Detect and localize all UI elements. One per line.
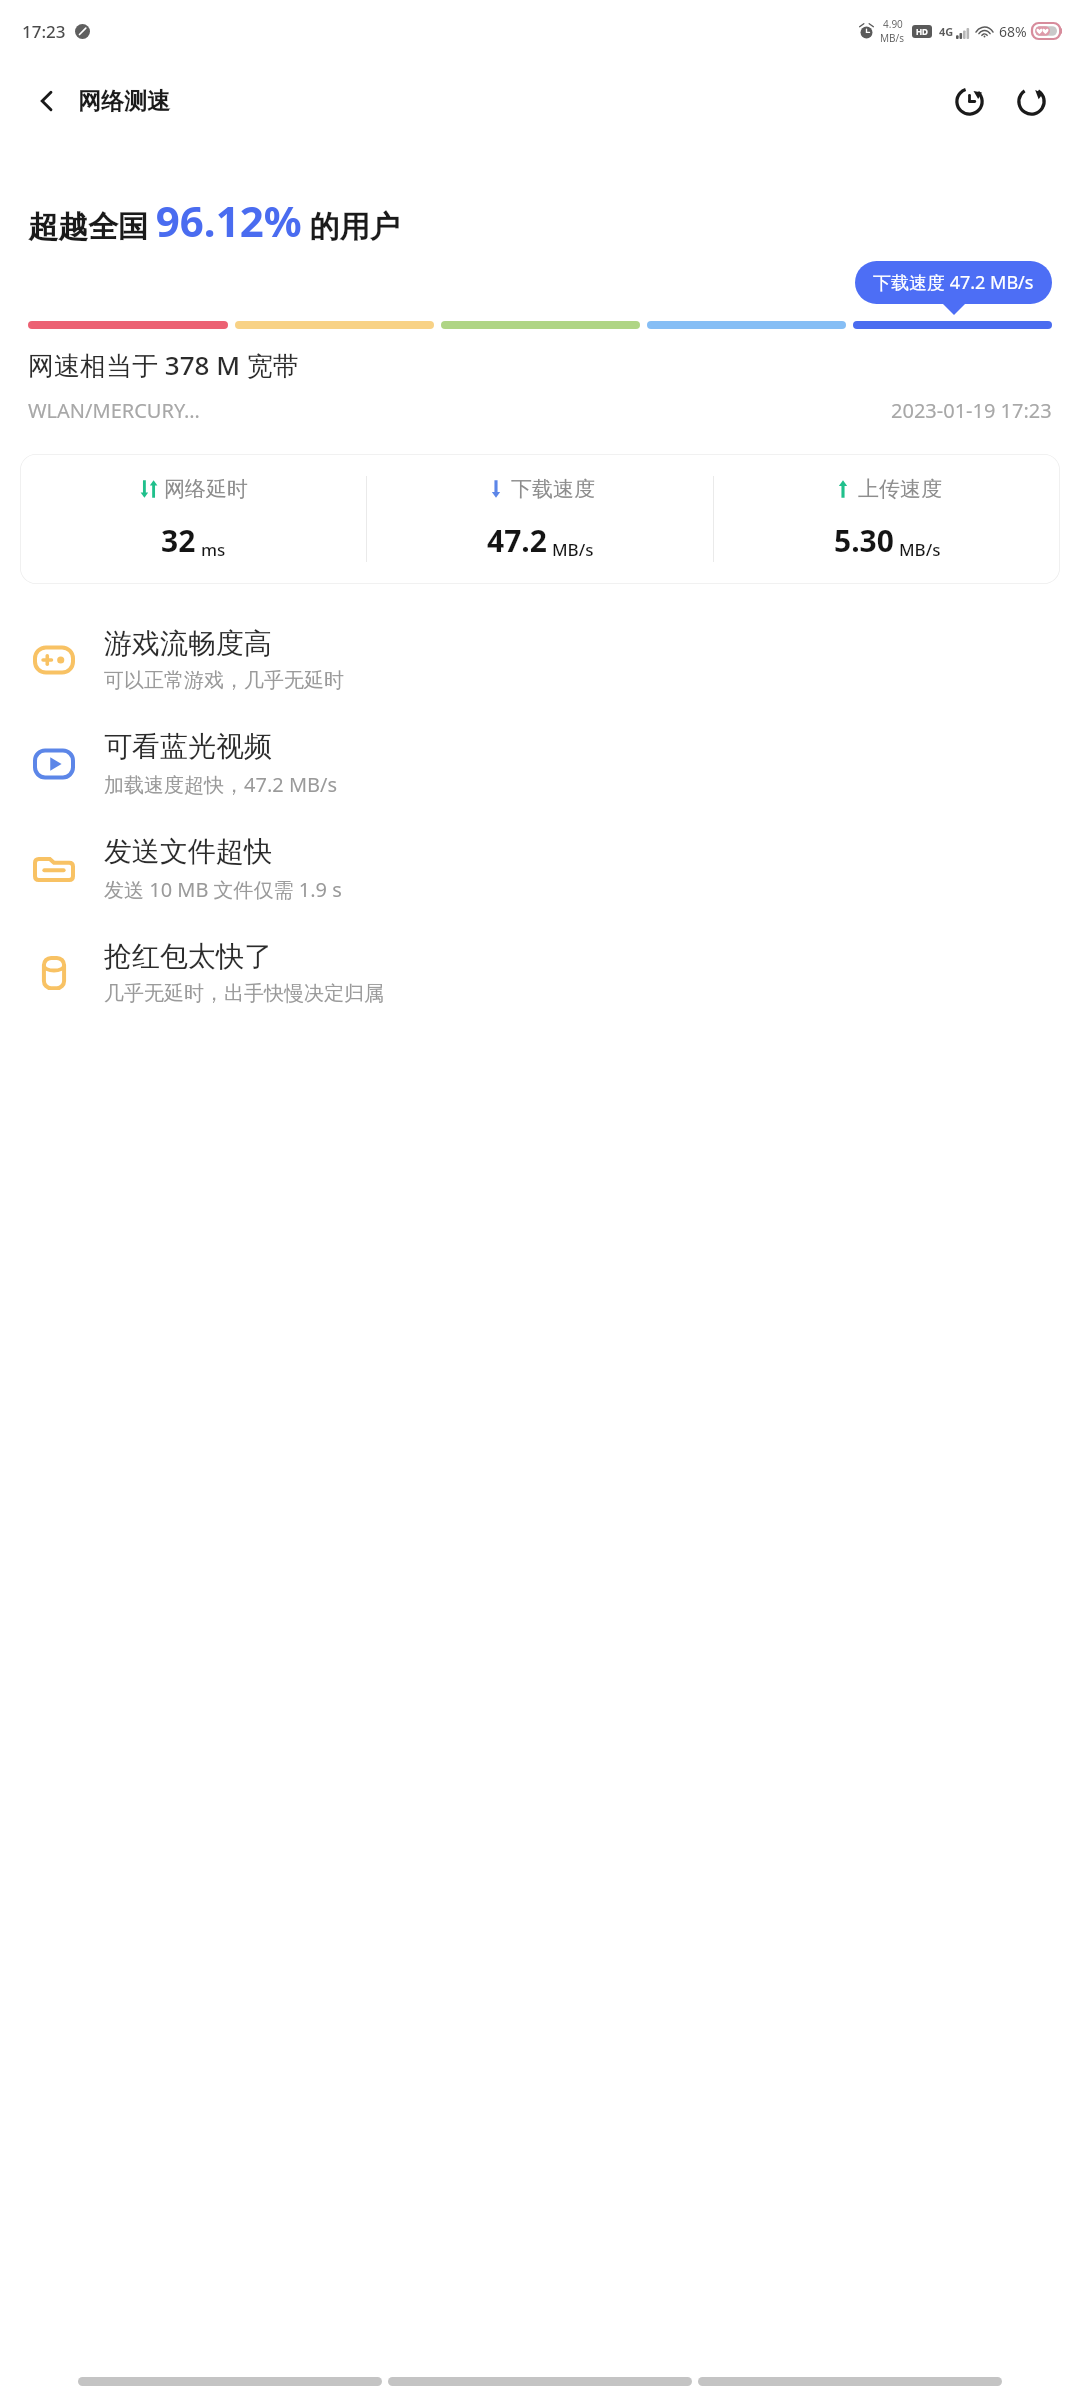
button[interactable]: 游戏流畅度高 <box>0 608 1080 711</box>
staticText: 2023-01-19 17:23 <box>891 397 1052 424</box>
staticText: 可看蓝光视频 <box>104 729 272 764</box>
button[interactable]: Back <box>26 80 176 122</box>
staticText: 68% <box>999 22 1027 41</box>
other: Back <box>32 86 62 116</box>
button[interactable]: 网络延时 <box>20 454 1060 584</box>
staticText: 发送文件超快 <box>104 834 272 869</box>
staticText: MB/s <box>899 538 941 561</box>
button[interactable]: 发送文件超快 <box>0 816 1080 921</box>
staticText: 游戏流畅度高 <box>104 626 272 661</box>
staticText: 网络测速 <box>78 87 170 116</box>
staticText: 下载速度 <box>511 476 595 502</box>
button[interactable]: History <box>946 78 992 124</box>
staticText: 发送 10 MB 文件仅需 1.9 s <box>104 876 342 903</box>
staticText: 下载速度 47.2 MB/s <box>873 270 1034 295</box>
staticText: 可以正常游戏，几乎无延时 <box>104 668 344 693</box>
staticText: 网速相当于 378 M 宽带 <box>28 347 299 383</box>
staticText: 超越全国 96.12% 的用户 <box>28 192 400 249</box>
staticText: 几乎无延时，出手快慢决定归属 <box>104 981 384 1006</box>
staticText: MB/s <box>552 538 594 561</box>
staticText: HD <box>916 26 928 37</box>
staticText: 32 <box>161 520 196 561</box>
staticText: 47.2 <box>487 520 547 561</box>
button[interactable]: 可看蓝光视频 <box>0 711 1080 816</box>
staticText: WLAN/MERCURY… <box>28 397 200 424</box>
button[interactable]: Refresh <box>1008 78 1054 124</box>
staticText: 4G <box>939 24 954 39</box>
staticText: MB/s <box>880 31 905 45</box>
button[interactable]: 抢红包太快了 <box>0 921 1080 1024</box>
staticText: 加载速度超快，47.2 MB/s <box>104 771 338 798</box>
staticText: 4.90 <box>883 17 903 31</box>
staticText: 5.30 <box>834 520 894 561</box>
staticText: 上传速度 <box>858 476 942 502</box>
staticText: ms <box>201 538 226 561</box>
staticText: 抢红包太快了 <box>104 939 272 974</box>
staticText: 网络延时 <box>164 476 248 502</box>
staticText: 17:23 <box>22 20 66 43</box>
